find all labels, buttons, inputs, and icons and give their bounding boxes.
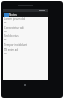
button[interactable]: Lorem ipsum dol	[4, 17, 47, 24]
staticText: on	[4, 52, 7, 55]
button[interactable]: App logo	[3, 12, 48, 17]
button[interactable]: Consectetur adi	[4, 26, 47, 33]
staticText: Lorem ipsum dol	[4, 17, 26, 21]
button[interactable]: Ut enim ad	[4, 48, 47, 55]
staticText: by	[4, 38, 7, 41]
staticText: by	[4, 21, 7, 24]
staticText: Sed do eius	[4, 34, 19, 38]
staticText: Ut enim ad	[4, 48, 18, 52]
button[interactable]: Sed do eius	[4, 34, 47, 41]
staticText: on	[4, 47, 7, 50]
staticText: Consectetur adi	[4, 26, 24, 30]
staticText: on	[4, 30, 7, 33]
staticText: Notes	[9, 13, 17, 17]
button[interactable]: Tempor incididunt	[4, 43, 47, 50]
staticText: Tempor incididunt	[4, 43, 28, 47]
